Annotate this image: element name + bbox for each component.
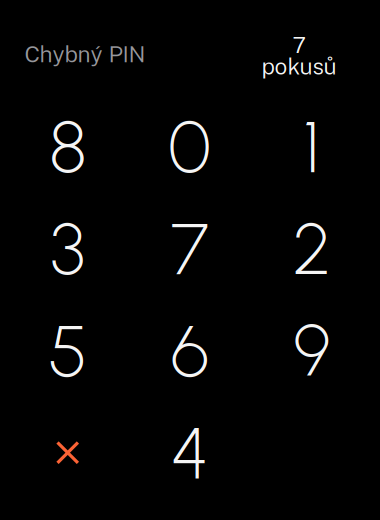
button[interactable]: 3 xyxy=(7,198,129,300)
button[interactable]: 9 xyxy=(251,300,373,402)
staticText: Chybný PIN xyxy=(24,41,145,67)
staticText: 7 xyxy=(171,205,209,292)
staticText: 1 xyxy=(303,103,320,190)
staticText: 8 xyxy=(49,103,86,190)
button[interactable]: 6 xyxy=(129,300,251,402)
staticText: 4 xyxy=(171,409,209,496)
button[interactable]: 5 xyxy=(7,300,129,402)
staticText: pokusů xyxy=(261,53,336,80)
staticText: 2 xyxy=(293,205,331,292)
button[interactable]: 8 xyxy=(7,96,129,198)
button[interactable]: Delete xyxy=(7,402,129,504)
staticText: 7 xyxy=(292,31,305,58)
staticText: 3 xyxy=(50,205,85,292)
button[interactable]: 2 xyxy=(251,198,373,300)
staticText: 6 xyxy=(171,307,209,394)
staticText: 5 xyxy=(48,307,87,394)
button[interactable]: 0 xyxy=(129,96,251,198)
button[interactable]: 7 xyxy=(129,198,251,300)
button[interactable]: 1 xyxy=(251,96,373,198)
staticText: 0 xyxy=(168,103,211,190)
staticText: 9 xyxy=(293,307,330,394)
button[interactable]: 4 xyxy=(129,402,251,504)
